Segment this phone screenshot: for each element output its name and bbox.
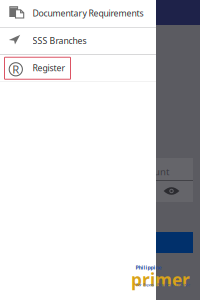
button[interactable]: Documentary Requirements <box>0 0 156 27</box>
staticText: Register <box>33 62 66 74</box>
staticText: primer <box>131 268 190 291</box>
staticText: Documentary Requirements <box>33 7 144 19</box>
button[interactable] <box>73 232 193 253</box>
staticText: R <box>12 61 19 77</box>
staticText: SSS Branches <box>33 35 87 46</box>
staticText: Account <box>132 165 169 178</box>
button[interactable]: R <box>0 55 156 82</box>
staticText: Philippine <box>135 264 161 271</box>
staticText: For Expats Business Lifestyle <box>136 282 190 287</box>
button[interactable]: SSS Branches <box>0 27 156 55</box>
